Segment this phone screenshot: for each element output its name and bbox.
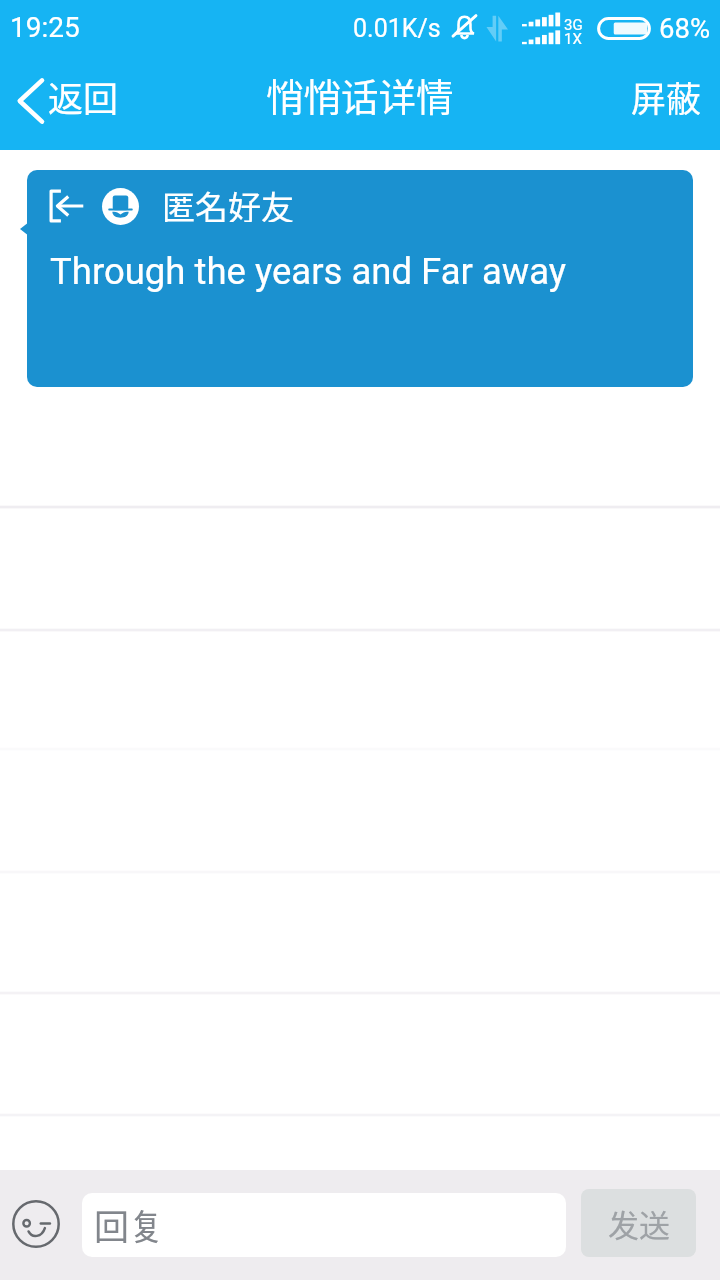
staticText: 屏蔽 — [631, 71, 702, 122]
button[interactable]: 返回 — [0, 55, 137, 150]
staticText: 回复 — [94, 1199, 165, 1250]
staticText: 68% — [659, 12, 711, 44]
staticText: 1X — [564, 30, 582, 48]
button[interactable]: 匿名好友 — [27, 170, 693, 387]
staticText: 发送 — [608, 1201, 670, 1246]
staticText: 3G — [564, 16, 583, 34]
button[interactable]: Emoji — [12, 1200, 60, 1248]
staticText: 匿名好友 — [162, 182, 294, 222]
staticText: Through the years and Far away — [50, 250, 567, 293]
staticText: 19:25 — [10, 11, 80, 44]
staticText: 悄悄话详情 — [266, 67, 454, 121]
button[interactable]: 发送 — [581, 1189, 696, 1257]
staticText: 返回 — [48, 71, 119, 122]
button[interactable]: 回复 — [82, 1193, 566, 1257]
button[interactable]: 屏蔽 — [607, 55, 720, 150]
staticText: 0.01K/s — [353, 14, 441, 43]
